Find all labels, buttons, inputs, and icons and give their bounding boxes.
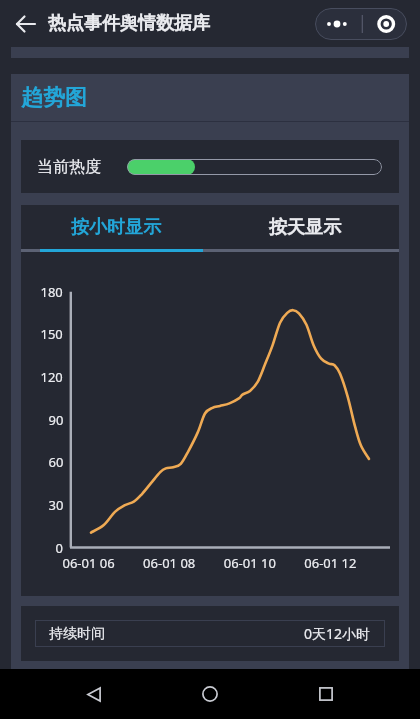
button[interactable]: 按小时显示: [21, 205, 210, 249]
staticText: 趋势图: [21, 84, 87, 112]
staticText: 按小时显示: [71, 216, 161, 239]
button[interactable]: More options: [315, 8, 407, 40]
button[interactable]: 按天显示: [210, 205, 399, 249]
staticText: 热点事件舆情数据库: [48, 12, 210, 35]
staticText: 0天12小时: [304, 624, 371, 643]
staticText: 当前热度: [37, 157, 101, 177]
staticText: 持续时间: [49, 625, 105, 643]
button[interactable]: Back: [72, 672, 116, 716]
button[interactable]: Recent apps: [304, 672, 348, 716]
staticText: 按天显示: [269, 216, 341, 239]
button[interactable]: Back: [12, 10, 40, 38]
button[interactable]: Home: [188, 672, 232, 716]
button[interactable]: 持续时间: [49, 620, 371, 647]
